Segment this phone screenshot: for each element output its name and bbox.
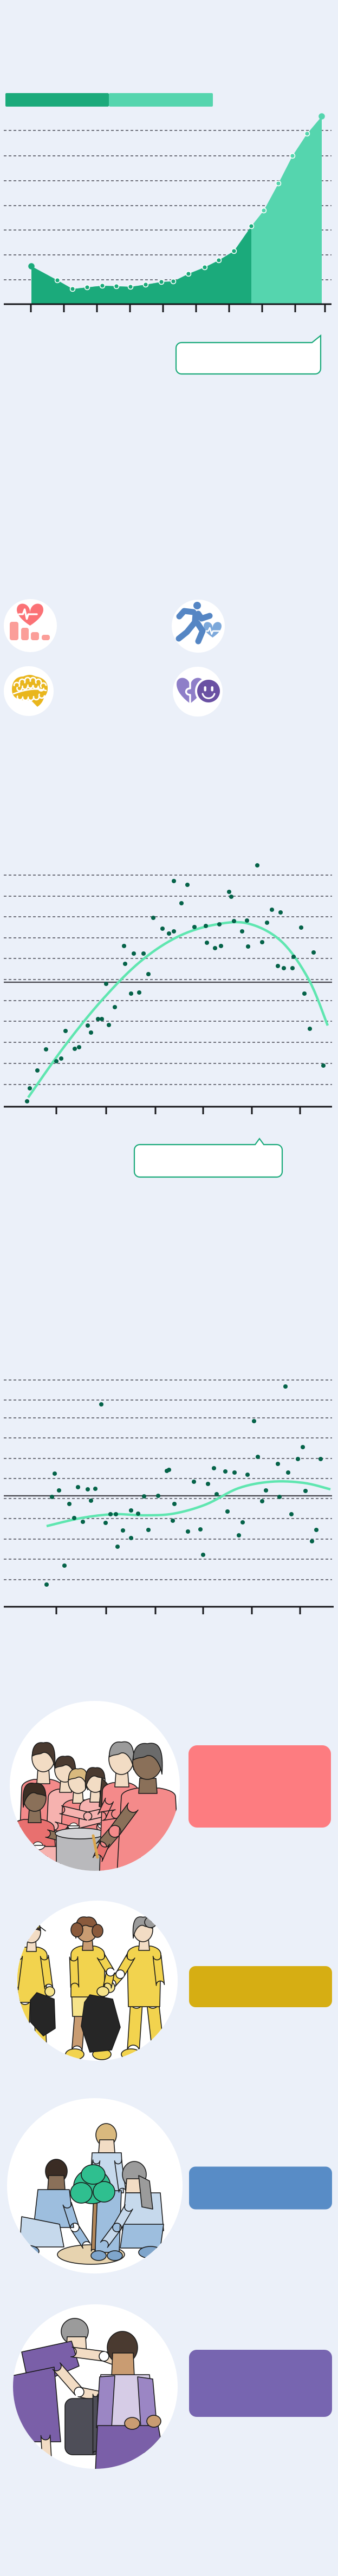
button[interactable] bbox=[188, 1745, 331, 1828]
button[interactable] bbox=[189, 1966, 332, 2007]
button[interactable] bbox=[189, 2167, 332, 2209]
button[interactable] bbox=[189, 2350, 332, 2417]
